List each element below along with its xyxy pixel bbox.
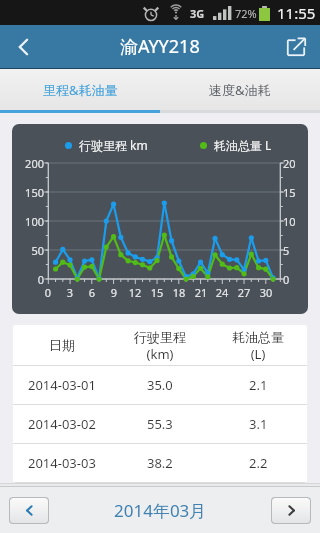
staticText: 18 [167,285,191,300]
staticText: 10 [283,214,307,229]
staticText: 11:55 [277,3,316,23]
button[interactable]: Back [0,25,48,68]
staticText: 2014-03-02 [28,415,96,433]
staticText: 0 [283,272,307,287]
button[interactable]: 2014-03-02 [13,405,307,443]
staticText: 150 [16,185,44,200]
button[interactable]: 里程&耗油量 [0,69,160,110]
staticText: 3 [58,285,82,300]
staticText: 速度&油耗 [209,81,271,99]
staticText: 2014-03-03 [28,454,96,472]
button[interactable]: 2014-03-03 [13,444,307,482]
staticText: 2014年03月 [114,499,207,522]
staticText: 200 [16,156,44,171]
staticText: 100 [16,214,44,229]
staticText: 12 [123,285,147,300]
button[interactable]: Next month [272,498,310,523]
staticText: 15 [145,285,169,300]
button[interactable]: Open external [272,25,320,68]
staticText: 5 [283,243,307,258]
staticText: 72% [235,6,257,21]
staticText: 2.1 [249,376,268,394]
staticText: 3.1 [249,415,268,433]
staticText: 耗油总量 L [214,137,272,153]
staticText: 日期 [49,337,75,353]
staticText: 渝AYY218 [120,34,200,59]
staticText: 38.2 [147,454,173,472]
staticText: 35.0 [147,376,173,394]
staticText: 24 [210,285,234,300]
staticText: 6 [80,285,104,300]
staticText: 行驶里程 km [79,137,148,153]
button[interactable]: 速度&油耗 [160,69,320,110]
staticText: 2014-03-01 [28,376,96,394]
staticText: 21 [189,285,213,300]
staticText: 行驶里程 (km) [134,329,186,362]
staticText: 9 [102,285,126,300]
staticText: 30 [254,285,278,300]
staticText: 55.3 [147,415,173,433]
staticText: 3G [190,6,205,21]
staticText: 里程&耗油量 [43,81,118,99]
button[interactable]: 2014-03-01 [13,366,307,404]
staticText: 27 [232,285,256,300]
staticText: 50 [16,243,44,258]
staticText: 15 [283,185,307,200]
staticText: 耗油总量 (L) [232,329,284,362]
button[interactable]: Previous month [10,498,48,523]
staticText: 0 [36,285,60,300]
staticText: 20 [283,156,307,171]
staticText: 2.2 [249,454,268,472]
staticText: 0 [16,272,44,287]
